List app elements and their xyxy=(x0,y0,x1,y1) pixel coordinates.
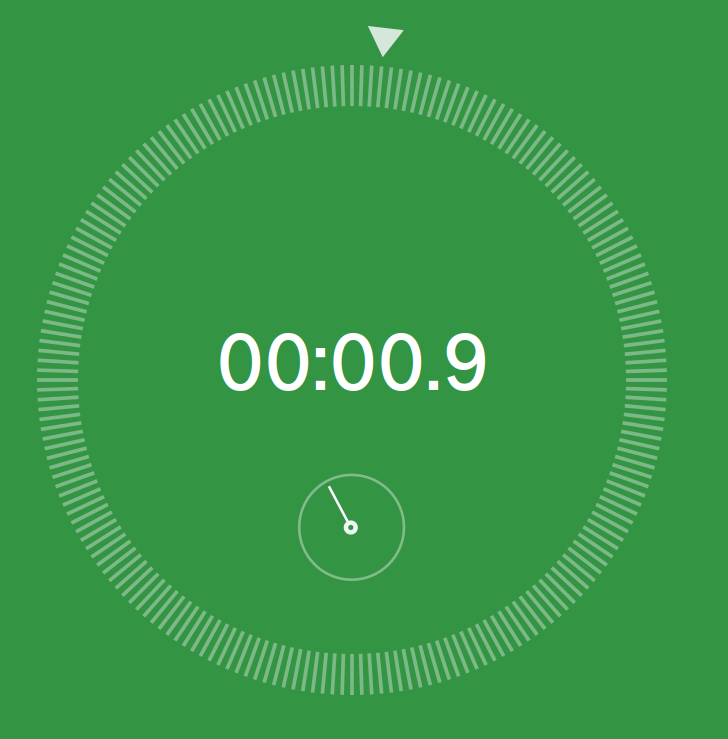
button[interactable]: Stop stopwatch, 00:00.9 elapsed xyxy=(0,0,728,739)
staticText: 00:00.9 xyxy=(216,307,490,413)
